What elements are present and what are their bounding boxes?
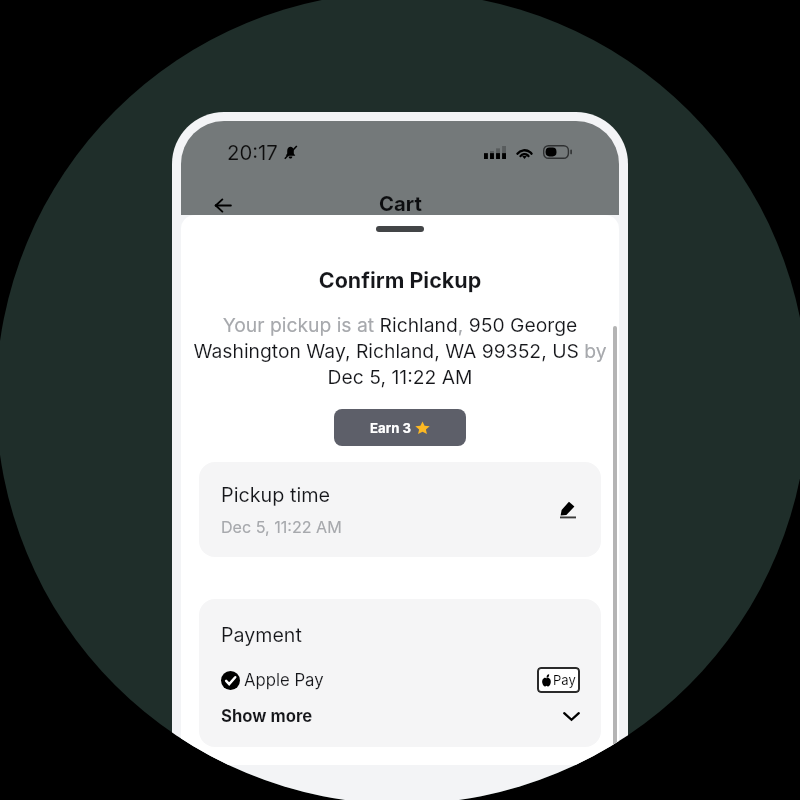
button[interactable]: Back [203,185,243,225]
button[interactable]: Show more [199,701,601,731]
staticText: Apple Pay [244,670,324,690]
staticText: Dec 5, 11:22 AM [221,517,342,536]
staticText: Your pickup is at Richland, 950 George W… [191,313,609,388]
staticText: Confirm Pickup [181,267,619,293]
button[interactable]: Earn 3 [334,409,466,446]
staticText: Show more [221,706,313,726]
staticText: Earn 3 [370,420,411,436]
button[interactable]: Pickup time [199,462,601,557]
button[interactable]: Apple Pay [199,665,601,695]
staticText: 20:17 [227,140,278,165]
staticText: Pay [553,672,576,688]
staticText: Cart [379,191,422,216]
button[interactable]: Edit pickup time [556,498,580,522]
staticText: Payment [221,623,302,647]
staticText: Pickup time [221,483,331,507]
